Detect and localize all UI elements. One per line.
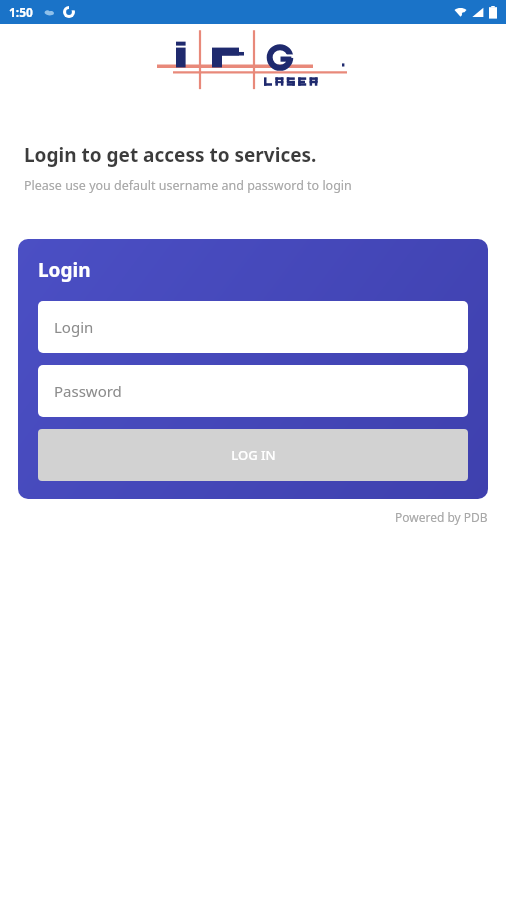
staticText: Please use you default username and pass… <box>24 177 352 194</box>
staticText: Login <box>54 317 94 337</box>
staticText: Password <box>54 381 122 401</box>
button[interactable]: LOG IN <box>38 429 468 481</box>
button[interactable]: Password <box>38 365 468 417</box>
staticText: Login to get access to services. <box>24 142 317 168</box>
button[interactable]: Login <box>38 301 468 353</box>
staticText: Powered by PDB <box>395 509 488 525</box>
staticText: Login <box>38 257 91 283</box>
staticText: 1:50 <box>9 4 33 20</box>
staticText: LOG IN <box>231 446 276 464</box>
